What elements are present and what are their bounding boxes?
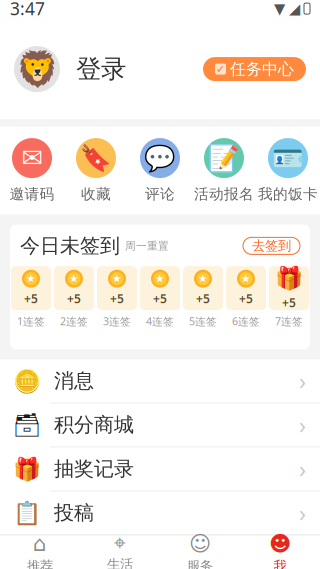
staticText: › <box>299 410 306 440</box>
button[interactable]: 📝 <box>192 128 256 213</box>
staticText: ✉ <box>21 144 42 172</box>
button[interactable]: 🔖 <box>64 128 128 213</box>
staticText: ★ <box>241 273 251 285</box>
staticText: 2连签 <box>60 314 88 328</box>
staticText: ★ <box>69 273 79 285</box>
staticText: 6连签 <box>232 314 260 328</box>
staticText: ▼ <box>274 0 285 17</box>
staticText: 5连签 <box>189 314 217 328</box>
button[interactable]: ✓ <box>203 57 306 81</box>
staticText: 抽奖记录 <box>54 457 134 481</box>
button[interactable]: 登录 <box>60 47 126 91</box>
staticText: 收藏 <box>81 185 111 203</box>
staticText: 7连签 <box>275 314 303 328</box>
staticText: +5 <box>282 295 296 310</box>
button[interactable]: 🗃 <box>0 403 320 447</box>
staticText: ★ <box>155 273 165 285</box>
button[interactable]: 🪙 <box>0 359 320 403</box>
staticText: ☻ <box>269 532 291 556</box>
staticText: ★ <box>198 273 208 285</box>
staticText: 📋 <box>13 500 41 526</box>
staticText: 🎁 <box>13 456 41 482</box>
staticText: 周一重置 <box>125 239 169 252</box>
staticText: +5 <box>196 291 210 307</box>
staticText: 3:47 <box>10 0 45 20</box>
button[interactable]: ⌖ <box>80 535 160 569</box>
staticText: 活动报名 <box>194 185 254 203</box>
staticText: 服务 <box>187 558 213 569</box>
staticText: 🪪 <box>272 144 304 172</box>
staticText: ✓ <box>216 63 225 75</box>
staticText: 任务中心 <box>230 59 294 79</box>
staticText: 投稿 <box>54 501 94 525</box>
staticText: 4连签 <box>146 314 174 328</box>
staticText: 登录 <box>76 53 126 85</box>
staticText: 🔖 <box>80 144 112 172</box>
staticText: ☺ <box>189 532 211 556</box>
staticText: 🎁 <box>275 266 303 292</box>
staticText: 邀请码 <box>9 185 54 203</box>
staticText: +5 <box>110 291 124 307</box>
staticText: ⌖ <box>114 533 126 554</box>
staticText: 我 <box>273 558 286 569</box>
staticText: › <box>299 454 306 484</box>
staticText: 💬 <box>144 144 176 172</box>
staticText: 积分商城 <box>54 413 134 437</box>
button[interactable]: 📋 <box>0 491 320 534</box>
staticText: 推荐 <box>27 558 53 569</box>
button[interactable]: ⌂ <box>0 535 80 569</box>
staticText: 消息 <box>54 369 94 393</box>
staticText: 📝 <box>208 144 240 172</box>
button[interactable]: 🎁 <box>0 447 320 491</box>
button[interactable]: 去签到 <box>243 237 300 254</box>
button[interactable]: ☺ <box>160 535 240 569</box>
staticText: ◢ <box>289 0 300 17</box>
staticText: +5 <box>67 291 81 307</box>
button[interactable]: 🪪 <box>256 128 320 213</box>
staticText: +5 <box>153 291 167 307</box>
staticText: ★ <box>112 273 122 285</box>
staticText: 🪙 <box>13 368 41 394</box>
staticText: 今日未签到 <box>20 234 120 258</box>
staticText: ⌂ <box>33 532 47 556</box>
staticText: +5 <box>239 291 253 307</box>
staticText: 生活 <box>107 556 133 569</box>
staticText: 🦁 <box>15 49 58 89</box>
staticText: 3连签 <box>103 314 131 328</box>
staticText: 我的饭卡 <box>258 185 318 203</box>
button[interactable]: Avatar <box>14 46 60 92</box>
staticText: ★ <box>26 273 36 285</box>
button[interactable]: 💬 <box>128 128 192 213</box>
staticText: +5 <box>24 291 38 307</box>
button[interactable]: ✉ <box>0 128 64 213</box>
staticText: 🗃 <box>12 412 41 438</box>
staticText: 评论 <box>145 185 175 203</box>
staticText: 去签到 <box>252 238 291 254</box>
button[interactable]: ☻ <box>240 535 320 569</box>
staticText: 1连签 <box>17 314 45 328</box>
staticText: › <box>299 498 306 528</box>
staticText: › <box>299 366 306 396</box>
